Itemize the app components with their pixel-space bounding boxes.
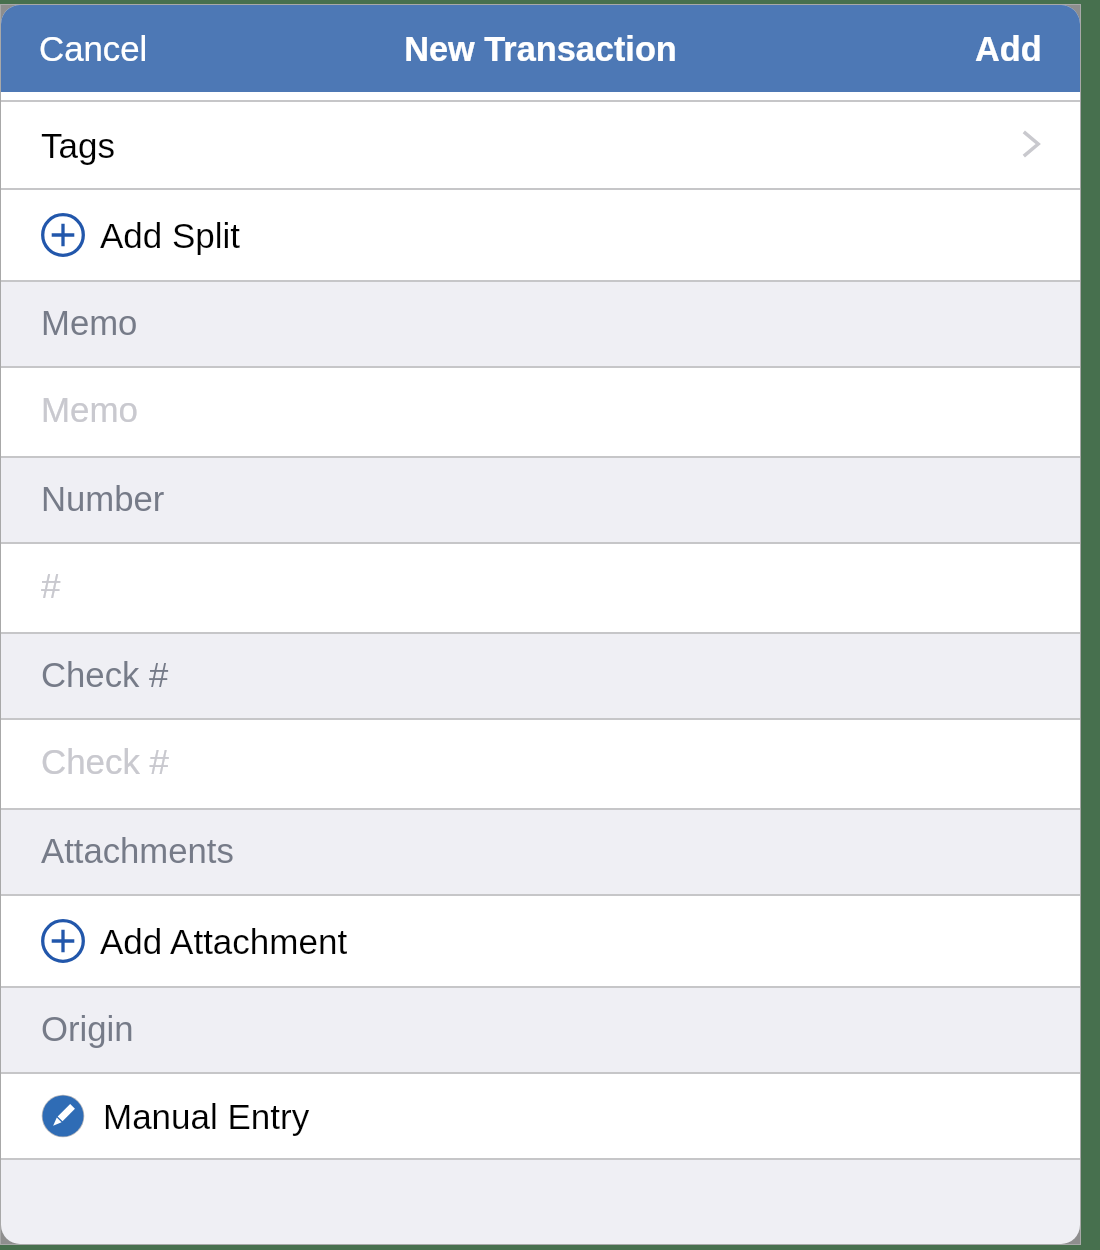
staticText: Cancel xyxy=(39,29,148,68)
staticText: Manual Entry xyxy=(103,1097,310,1136)
staticText: Add Split xyxy=(100,216,241,255)
button[interactable]: Memo xyxy=(1,368,1080,456)
staticText: Memo xyxy=(41,390,138,429)
staticText: Check # xyxy=(41,656,169,695)
staticText: Add Attachment xyxy=(100,922,348,961)
button[interactable]: Add xyxy=(955,18,1080,80)
button[interactable]: Tags xyxy=(1,102,1080,188)
staticText: Attachments xyxy=(41,832,234,871)
staticText: Origin xyxy=(41,1010,134,1049)
staticText: Number xyxy=(41,480,165,519)
staticText: Tags xyxy=(41,126,115,165)
staticText: Check # xyxy=(41,742,169,781)
other: Open tags xyxy=(1022,130,1040,158)
button[interactable]: Add Attachment xyxy=(1,896,1080,986)
button[interactable]: Cancel xyxy=(1,17,168,80)
staticText: # xyxy=(41,566,61,605)
staticText: Add xyxy=(975,30,1042,68)
staticText: New Transaction xyxy=(404,30,677,68)
button[interactable]: Check # xyxy=(1,720,1080,808)
button[interactable]: Manual Entry xyxy=(1,1074,1080,1158)
button[interactable]: Add Split xyxy=(1,190,1080,280)
staticText: Memo xyxy=(41,304,138,343)
